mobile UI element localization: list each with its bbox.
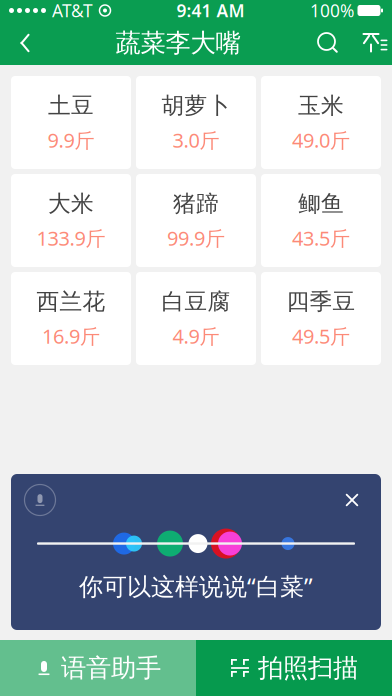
button[interactable]: Close (335, 483, 369, 517)
staticText: 鲫鱼 (298, 190, 344, 218)
button[interactable]: Back (0, 21, 50, 65)
button[interactable]: 拍照扫描 (196, 640, 392, 696)
staticText: 白豆腐 (161, 288, 230, 316)
staticText: 四季豆 (286, 288, 355, 316)
button[interactable]: 玉米 (261, 76, 381, 169)
staticText: 蔬菜李大嘴 (115, 27, 240, 58)
staticText: 语音助手 (61, 652, 161, 683)
staticText: 100% (310, 0, 354, 22)
button[interactable]: 鲫鱼 (261, 174, 381, 267)
staticText: 玉米 (298, 92, 344, 120)
button[interactable]: Search (306, 21, 350, 65)
staticText: 4.9斤 (172, 323, 219, 349)
staticText: 拍照扫描 (258, 652, 358, 683)
button[interactable]: 胡萝卜 (136, 76, 256, 169)
staticText: 3.0斤 (172, 127, 219, 153)
staticText: 133.9斤 (36, 225, 105, 251)
staticText: 猪蹄 (173, 190, 219, 218)
button[interactable]: 猪蹄 (136, 174, 256, 267)
staticText: 9:41 AM (176, 0, 244, 22)
button[interactable]: 大米 (11, 174, 131, 267)
staticText: 西兰花 (36, 288, 105, 316)
staticText: 土豆 (48, 92, 94, 120)
button[interactable]: 四季豆 (261, 272, 381, 365)
staticText: 49.5斤 (292, 323, 350, 349)
button[interactable]: 土豆 (11, 76, 131, 169)
staticText: 49.0斤 (292, 127, 350, 153)
button[interactable]: Filter (350, 21, 392, 65)
button[interactable]: 语音助手 (0, 640, 196, 696)
button[interactable]: 西兰花 (11, 272, 131, 365)
staticText: 9.9斤 (47, 127, 94, 153)
staticText: AT&T (52, 0, 93, 22)
staticText: 43.5斤 (292, 225, 350, 251)
staticText: 胡萝卜 (161, 92, 230, 120)
staticText: 大米 (48, 190, 94, 218)
staticText: 你可以这样说说“白菜” (79, 570, 313, 602)
button[interactable]: 白豆腐 (136, 272, 256, 365)
staticText: 99.9斤 (167, 225, 225, 251)
staticText: 16.9斤 (42, 323, 100, 349)
